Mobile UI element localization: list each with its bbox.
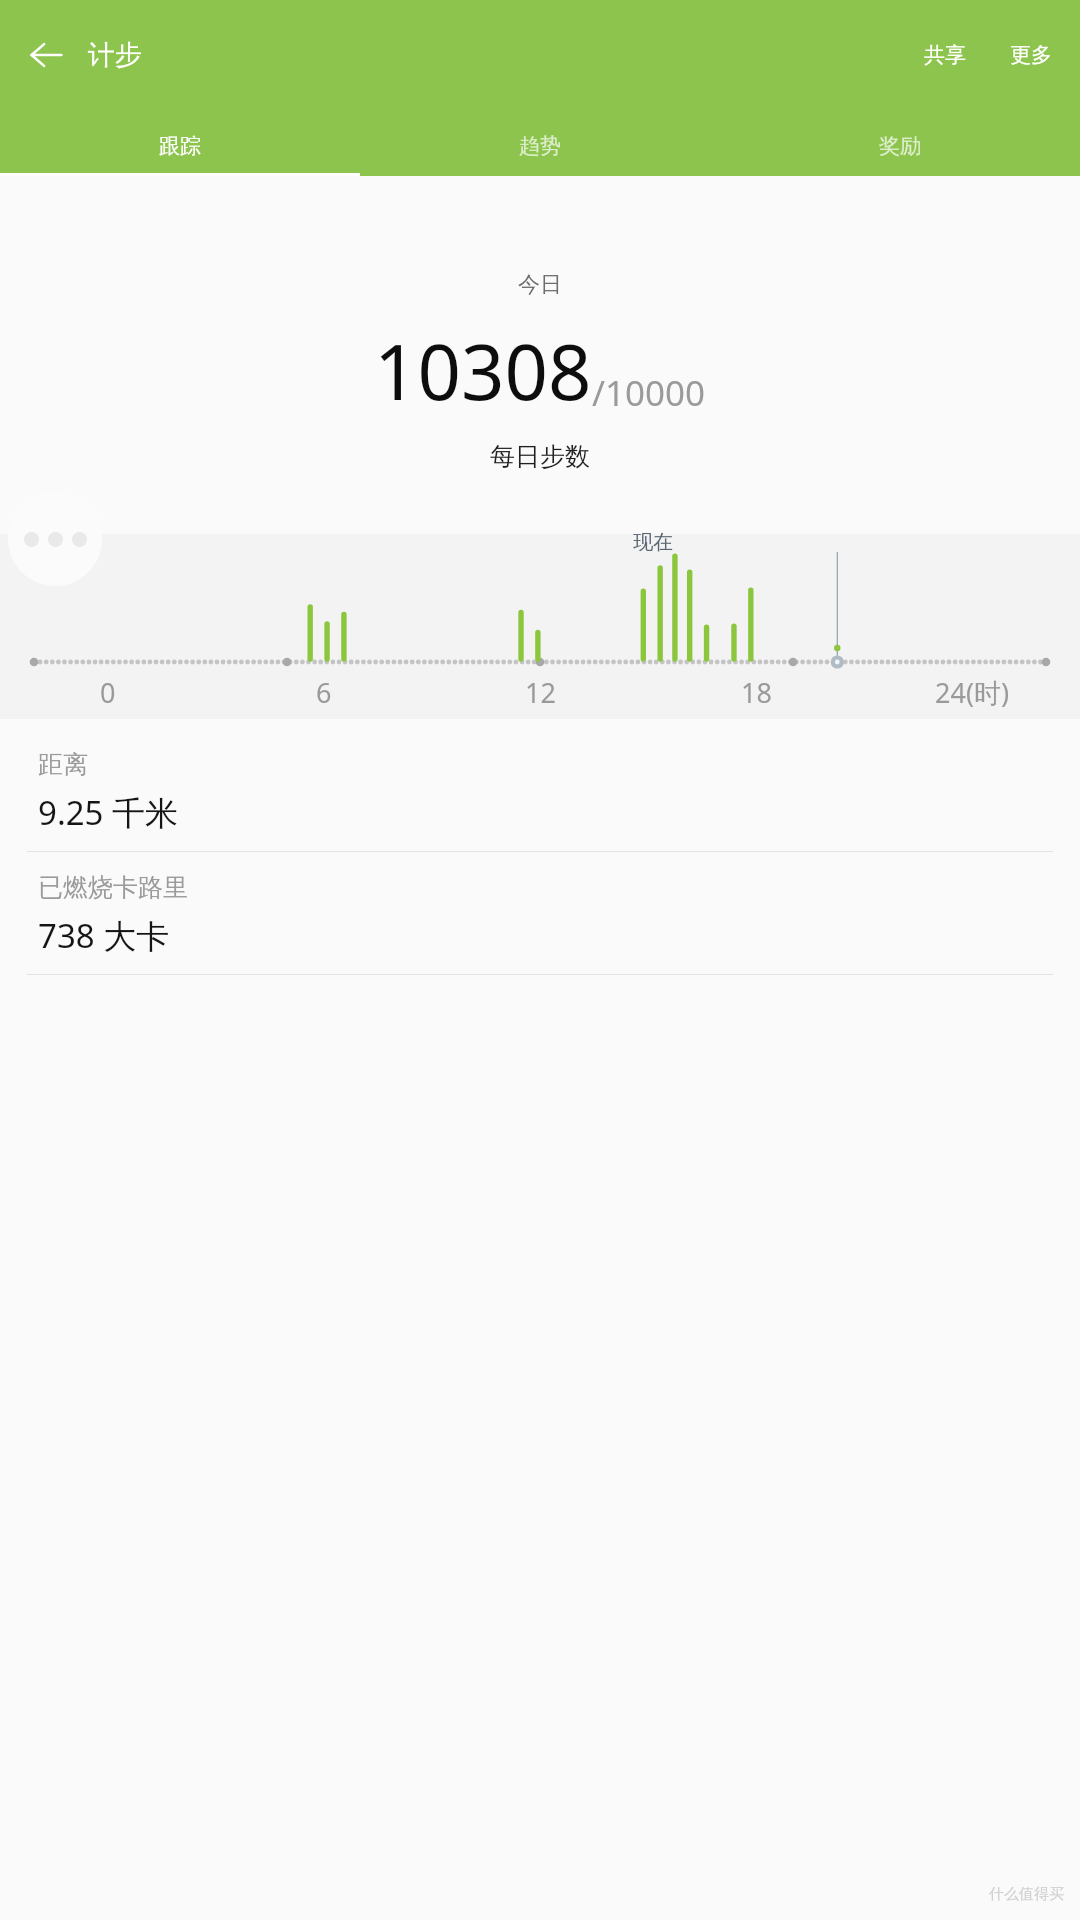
staticText: 已燃烧卡路里 — [38, 872, 188, 903]
staticText: 每日步数 — [490, 441, 590, 472]
staticText: 10308 — [374, 319, 592, 423]
button[interactable]: More options — [8, 492, 102, 586]
staticText: 今日 — [518, 271, 562, 299]
staticText: 现在 — [633, 530, 673, 555]
button[interactable]: 共享 — [916, 32, 974, 78]
button[interactable]: 跟踪 — [0, 118, 360, 173]
staticText: /10000 — [592, 369, 706, 417]
button[interactable]: 距离 — [0, 729, 1080, 851]
staticText: 跟踪 — [159, 133, 201, 159]
staticText: 18 — [741, 674, 772, 711]
staticText: 12 — [525, 674, 556, 711]
staticText: 距离 — [38, 749, 88, 780]
staticText: 6 — [316, 674, 332, 711]
staticText: 9.25 千米 — [38, 790, 179, 835]
staticText: 738 大卡 — [38, 913, 170, 958]
staticText: 24(时) — [935, 674, 1010, 711]
button[interactable]: Back — [20, 29, 72, 81]
staticText: 奖励 — [879, 133, 921, 159]
staticText: 0 — [100, 674, 116, 711]
button[interactable]: 奖励 — [720, 118, 1080, 173]
button[interactable]: 已燃烧卡路里 — [0, 852, 1080, 974]
button[interactable]: 更多 — [1002, 32, 1060, 78]
staticText: 更多 — [1010, 42, 1052, 68]
staticText: 计步 — [88, 38, 142, 72]
button[interactable]: 趋势 — [360, 118, 720, 173]
staticText: 共享 — [924, 42, 966, 68]
staticText: 什么值得买 — [989, 1885, 1064, 1904]
staticText: 趋势 — [519, 133, 561, 159]
